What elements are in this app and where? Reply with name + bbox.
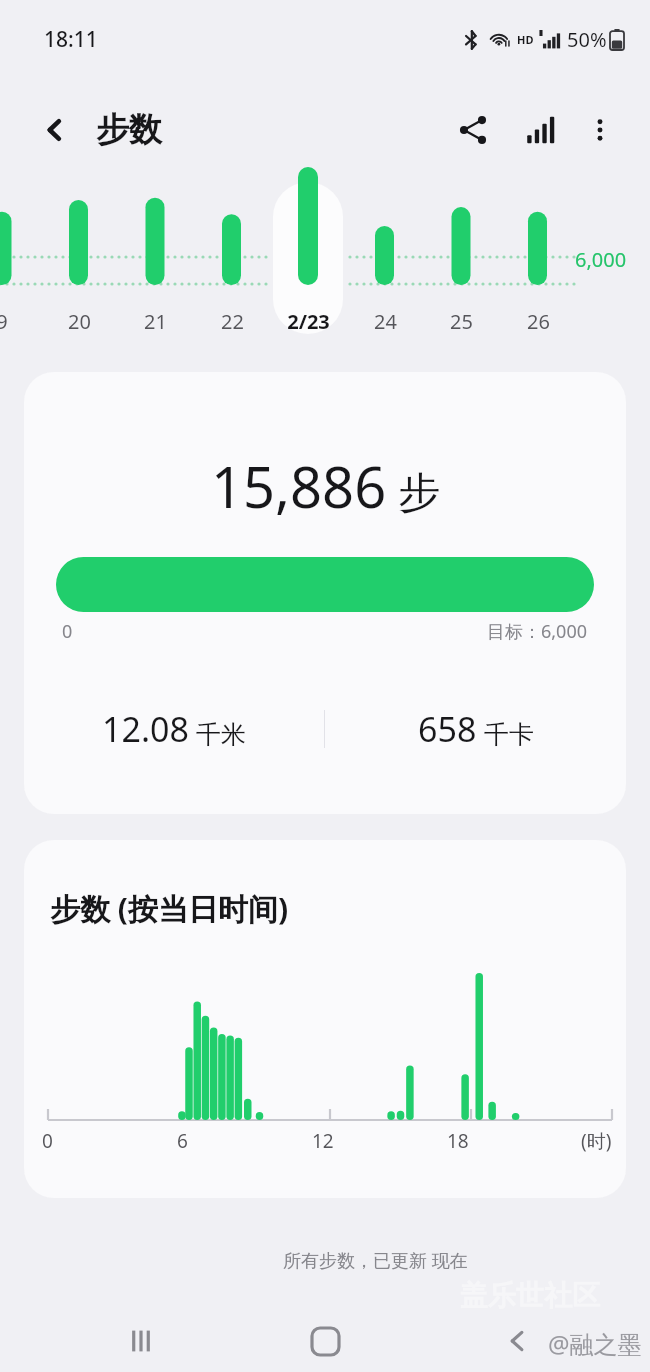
- staticText: 步数 (按当日时间): [50, 888, 289, 929]
- button[interactable]: 9: [0, 304, 40, 338]
- staticText: 21: [144, 308, 167, 335]
- staticText: 658: [418, 706, 477, 752]
- staticText: 18: [447, 1128, 469, 1154]
- staticText: 所有步数，已更新 现在: [283, 1248, 468, 1273]
- button[interactable]: 20: [41, 304, 117, 338]
- staticText: 24: [374, 308, 397, 335]
- staticText: 0: [42, 1128, 53, 1154]
- staticText: 26: [527, 308, 550, 335]
- staticText: 12.08: [102, 706, 189, 752]
- staticText: 15,886: [211, 448, 387, 524]
- staticText: 6,000: [575, 246, 627, 273]
- button[interactable]: 2/23: [270, 304, 346, 338]
- button[interactable]: 26: [500, 304, 576, 338]
- button[interactable]: Back: [30, 105, 80, 155]
- staticText: 6: [177, 1128, 188, 1154]
- staticText: HD: [517, 32, 534, 47]
- staticText: 千卡: [484, 719, 534, 750]
- staticText: 9: [0, 308, 8, 335]
- staticText: 千米: [196, 719, 246, 750]
- button[interactable]: Share: [444, 101, 502, 159]
- button[interactable]: 25: [423, 304, 499, 338]
- staticText: (时): [581, 1128, 612, 1154]
- button[interactable]: 15,886: [24, 372, 626, 814]
- button[interactable]: 22: [194, 304, 270, 338]
- staticText: 步: [398, 467, 440, 520]
- button[interactable]: Trends: [510, 101, 568, 159]
- button[interactable]: More options: [572, 102, 628, 158]
- staticText: 50%: [567, 26, 607, 53]
- button[interactable]: 步数 (按当日时间): [24, 840, 626, 1198]
- staticText: 目标：6,000: [487, 619, 588, 644]
- staticText: 18:11: [44, 25, 98, 54]
- button[interactable]: Back: [482, 1310, 554, 1372]
- staticText: 12: [312, 1128, 334, 1154]
- button[interactable]: Home: [289, 1310, 361, 1372]
- staticText: 0: [62, 619, 73, 644]
- button[interactable]: Recent apps: [105, 1310, 177, 1372]
- staticText: 22: [221, 308, 244, 335]
- staticText: @融之墨: [548, 1327, 642, 1360]
- button[interactable]: 24: [347, 304, 423, 338]
- staticText: 步数: [96, 109, 162, 151]
- staticText: 20: [68, 308, 91, 335]
- staticText: 25: [450, 308, 473, 335]
- staticText: 2/23: [287, 308, 330, 335]
- button[interactable]: 21: [117, 304, 193, 338]
